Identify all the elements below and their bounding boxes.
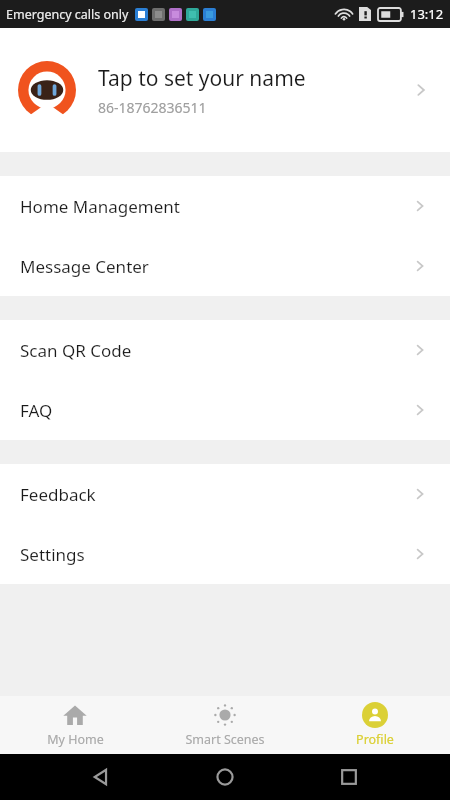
button[interactable]: Back	[78, 754, 124, 800]
staticText: Home Management	[20, 195, 180, 218]
button[interactable]: Home	[202, 754, 248, 800]
staticText: FAQ	[20, 399, 53, 422]
button[interactable]: Feedback	[0, 464, 450, 524]
button[interactable]: Settings	[0, 524, 450, 584]
button[interactable]: FAQ	[0, 380, 450, 440]
button[interactable]: My Home	[0, 696, 150, 754]
staticText: Profile	[356, 731, 394, 748]
staticText: Feedback	[20, 483, 96, 506]
staticText: Smart Scenes	[185, 731, 265, 748]
other: Smart Scenes	[212, 702, 238, 728]
staticText: Emergency calls only	[6, 6, 129, 23]
button[interactable]: Scan QR Code	[0, 320, 450, 380]
staticText: Tap to set your name	[98, 64, 306, 93]
button[interactable]: Message Center	[0, 236, 450, 296]
staticText: My Home	[47, 731, 104, 748]
staticText: Message Center	[20, 255, 149, 278]
staticText: Scan QR Code	[20, 339, 132, 362]
other: My Home	[62, 702, 88, 728]
button[interactable]: Home Management	[0, 176, 450, 236]
staticText: 86-18762836511	[98, 98, 207, 117]
staticText: Settings	[20, 543, 85, 566]
button[interactable]: Recents	[326, 754, 372, 800]
other: Profile	[362, 702, 388, 728]
button[interactable]: Smart Scenes	[150, 696, 300, 754]
button[interactable]: Tap to set your name	[0, 28, 450, 152]
staticText: 13:12	[410, 5, 444, 23]
button[interactable]: Profile	[300, 696, 450, 754]
